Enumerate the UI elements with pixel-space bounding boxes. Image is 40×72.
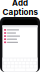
staticText: Captions (2, 7, 37, 17)
staticText: Add (12, 0, 28, 8)
